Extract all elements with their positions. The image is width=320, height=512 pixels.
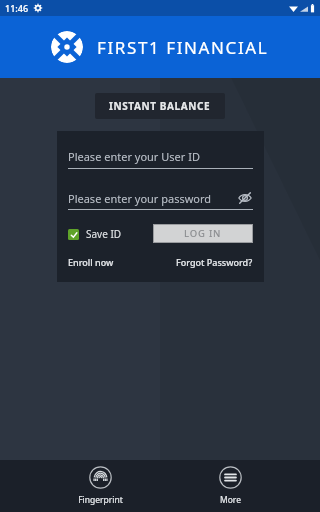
staticText: Forgot Password? <box>176 256 253 268</box>
button[interactable]: LOG IN <box>154 225 252 242</box>
button[interactable]: Save ID <box>68 227 122 241</box>
button[interactable]: INSTANT BALANCE <box>95 93 225 119</box>
staticText: Fingerprint <box>78 494 123 506</box>
button[interactable]: More <box>201 462 260 510</box>
staticText: 11:46 <box>5 2 29 14</box>
staticText: FIRST1 FINANCIAL <box>97 36 269 59</box>
staticText: More <box>220 494 241 506</box>
staticText: Please enter your password <box>68 191 212 206</box>
button[interactable]: Enroll now <box>68 256 114 268</box>
staticText: LOG IN <box>184 227 222 240</box>
button[interactable]: Please enter your password <box>68 190 253 210</box>
button[interactable]: Fingerprint login <box>60 462 141 510</box>
staticText: Enroll now <box>68 256 114 268</box>
staticText: Please enter your User ID <box>68 149 200 164</box>
button[interactable]: Please enter your User ID <box>68 149 253 169</box>
staticText: INSTANT BALANCE <box>109 99 211 113</box>
button[interactable]: Show password <box>237 190 253 206</box>
button[interactable]: Forgot Password? <box>176 256 253 268</box>
staticText: Save ID <box>86 227 122 241</box>
